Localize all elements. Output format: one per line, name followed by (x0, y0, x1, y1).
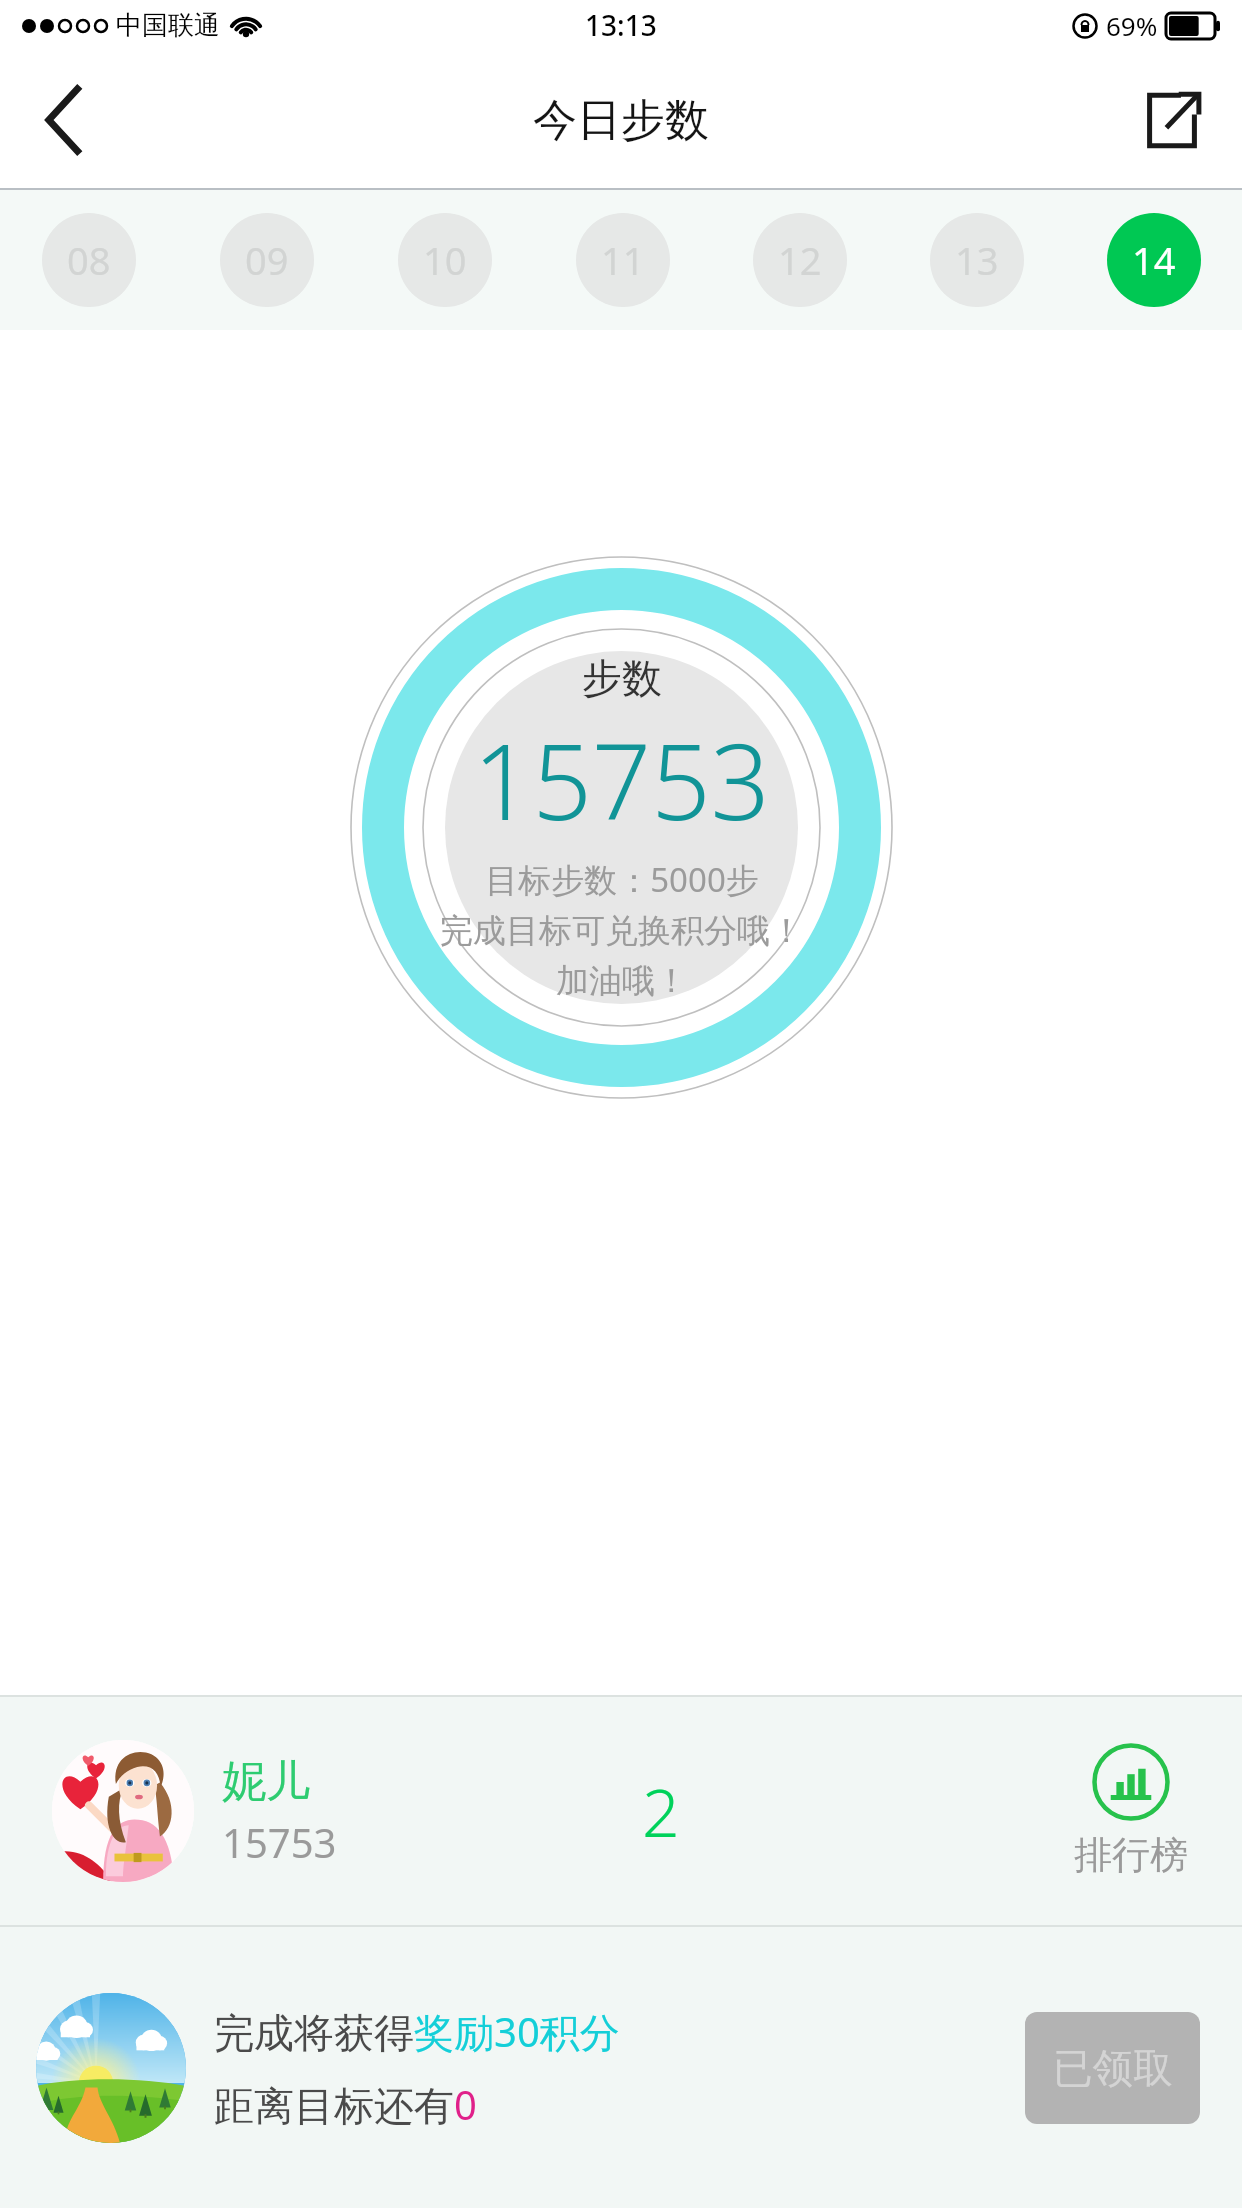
staticText: 13:13 (585, 6, 657, 44)
staticText: 10 (423, 234, 467, 286)
staticText: 11 (601, 234, 645, 286)
button[interactable]: 14 (1107, 213, 1201, 307)
button[interactable]: 10 (398, 213, 492, 307)
staticText: 12 (778, 234, 822, 286)
staticText: 加油哦！ (556, 960, 688, 1002)
staticText: 排行榜 (1074, 1831, 1188, 1879)
staticText: 08 (67, 234, 111, 286)
staticText: 中国联通 (116, 9, 220, 42)
staticText: 13 (955, 234, 999, 286)
button[interactable]: Back (14, 70, 114, 170)
staticText: 完成目标可兑换积分哦！ (440, 910, 803, 952)
staticText: 已领取 (1053, 2043, 1173, 2093)
button[interactable]: 08 (42, 213, 136, 307)
button[interactable]: Share (1122, 70, 1222, 170)
staticText: 15753 (473, 709, 770, 851)
staticText: 今日步数 (533, 93, 709, 148)
button[interactable]: 13 (930, 213, 1024, 307)
staticText: 妮儿 (222, 1754, 310, 1809)
staticText: 15753 (222, 1815, 337, 1869)
button[interactable]: 排行榜 (1062, 1743, 1200, 1879)
button[interactable]: 已领取 (1025, 2012, 1200, 2124)
button[interactable]: 妮儿 (0, 1697, 1242, 1925)
button[interactable]: 09 (220, 213, 314, 307)
staticText: 09 (245, 234, 289, 286)
staticText: 14 (1132, 234, 1176, 286)
button[interactable]: 11 (576, 213, 670, 307)
staticText: 目标步数：5000步 (485, 857, 759, 902)
button[interactable]: 12 (753, 213, 847, 307)
staticText: 完成将获得奖励30积分 (214, 2004, 620, 2059)
staticText: 步数 (582, 653, 662, 703)
staticText: 2 (642, 1766, 680, 1856)
staticText: 距离目标还有0 (214, 2077, 477, 2132)
staticText: 69% (1106, 8, 1158, 43)
